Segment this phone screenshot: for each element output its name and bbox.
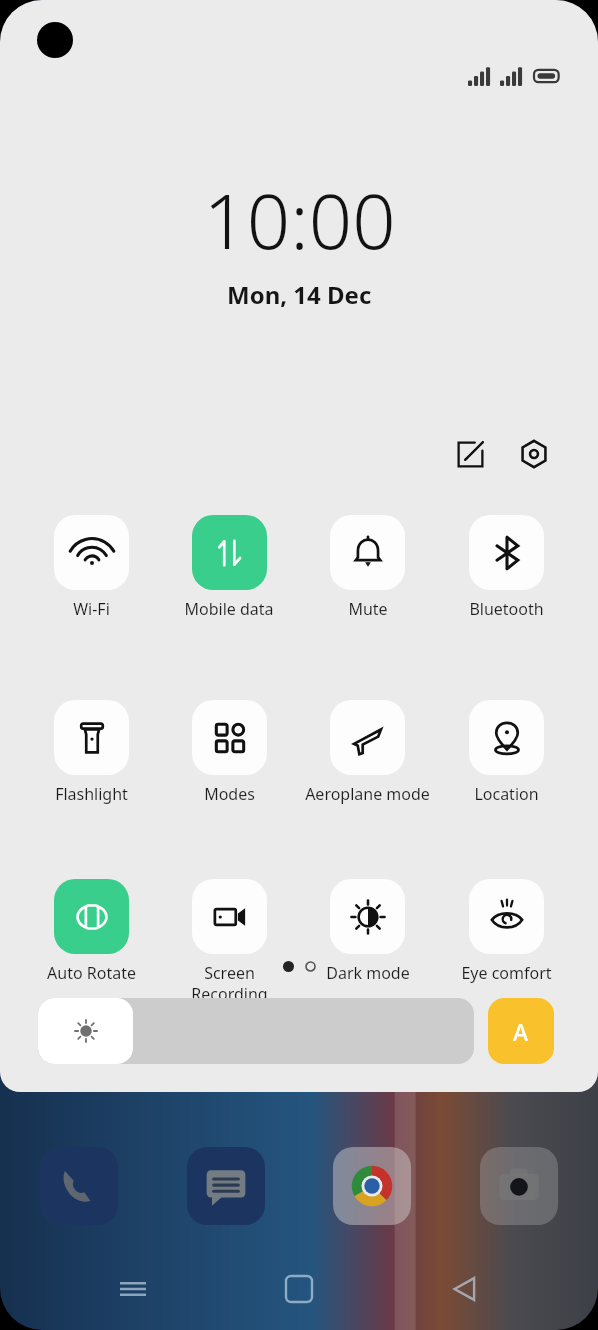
button[interactable]: Brightness [38,998,474,1064]
button[interactable]: A [488,998,554,1064]
staticText: Auto Rotate [47,962,136,984]
button[interactable]: Edit [448,432,492,476]
staticText: Eye comfort [461,962,552,984]
button[interactable]: Flashlight [22,700,160,805]
button[interactable]: Screen Recording [160,879,298,1005]
staticText: Aeroplane mode [305,783,430,805]
button[interactable]: Mobile data [160,515,298,620]
staticText: A [513,1016,529,1047]
staticText: Mon, 14 Dec [227,278,372,311]
staticText: Flashlight [55,783,128,805]
button[interactable]: Settings [512,432,556,476]
button[interactable] [480,1147,558,1225]
button[interactable]: Eye comfort [437,879,576,984]
staticText: Modes [204,783,255,805]
button[interactable] [187,1147,265,1225]
staticText: Bluetooth [469,598,544,620]
staticText: Screen Recording [191,962,268,1005]
staticText: Wi-Fi [73,598,110,620]
button[interactable]: Modes [160,700,298,805]
button[interactable] [333,1147,411,1225]
button[interactable]: Mute [298,515,437,620]
staticText: Mobile data [184,598,274,620]
button[interactable]: Aeroplane mode [298,700,437,805]
button[interactable]: Location [437,700,576,805]
staticText: Mute [348,598,388,620]
button[interactable] [40,1147,118,1225]
staticText: 10:00 [203,168,396,272]
staticText: Dark mode [326,962,410,984]
button[interactable]: Dark mode [298,879,437,984]
button[interactable]: Auto Rotate [22,879,160,984]
button[interactable]: Wi-Fi [22,515,160,620]
staticText: Location [474,783,539,805]
button[interactable]: Bluetooth [437,515,576,620]
